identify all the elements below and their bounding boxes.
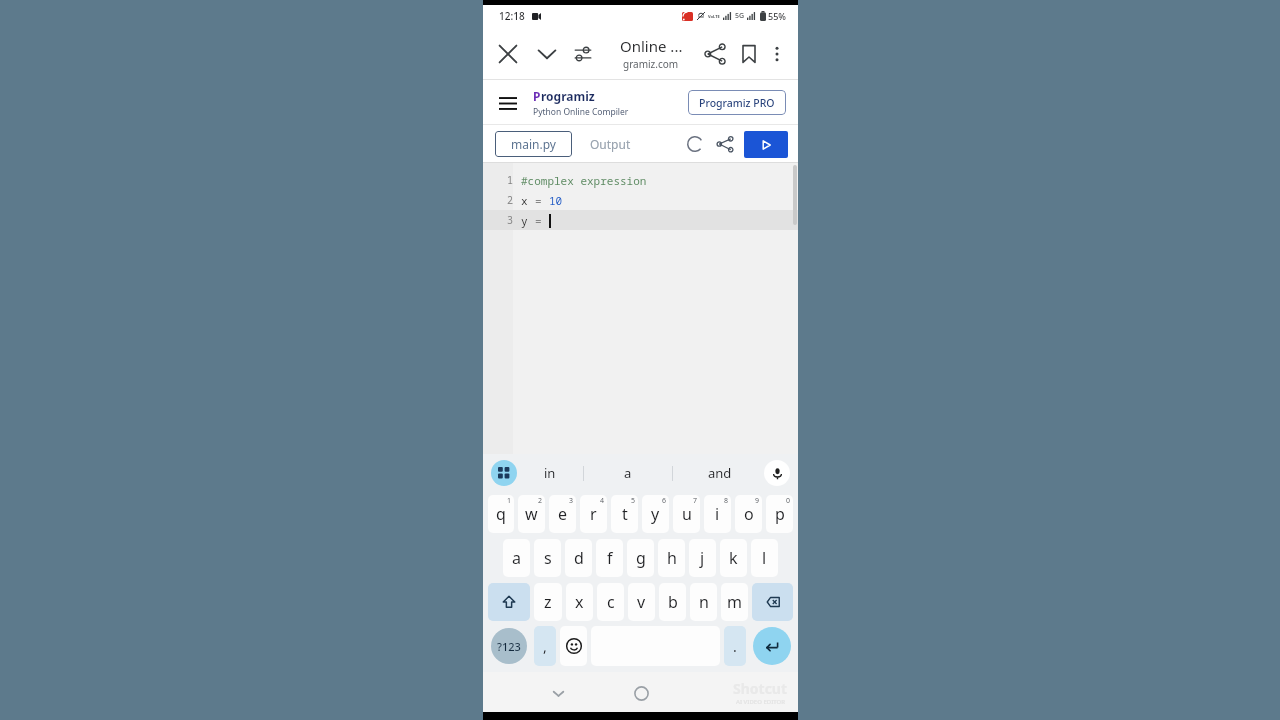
button[interactable]: . xyxy=(724,626,746,666)
button[interactable]: x xyxy=(566,583,593,621)
staticText: z xyxy=(544,591,552,613)
staticText: ?123 xyxy=(497,639,521,654)
button[interactable]: Page settings xyxy=(570,41,596,67)
button[interactable]: z xyxy=(534,583,562,621)
staticText: 5G xyxy=(735,11,745,21)
staticText: u xyxy=(682,503,692,525)
button[interactable]: Share code xyxy=(712,131,738,157)
staticText: a xyxy=(512,547,521,569)
button[interactable]: g xyxy=(627,539,654,577)
button[interactable]: m xyxy=(721,583,748,621)
staticText: Output xyxy=(590,136,631,152)
staticText: 9 xyxy=(755,496,760,506)
button[interactable]: main.py xyxy=(495,131,572,157)
button[interactable]: y xyxy=(642,495,669,533)
staticText: h xyxy=(667,547,677,569)
staticText: 7 xyxy=(693,496,698,506)
button[interactable]: p xyxy=(766,495,793,533)
button[interactable]: s xyxy=(534,539,561,577)
staticText: and xyxy=(708,464,732,482)
button[interactable]: Home xyxy=(628,680,654,706)
button[interactable]: Hide keyboard xyxy=(545,680,571,706)
staticText: y xyxy=(521,213,535,228)
staticText: in xyxy=(544,464,556,482)
button[interactable]: Close xyxy=(493,39,523,69)
button[interactable]: Share xyxy=(700,39,730,69)
button[interactable]: b xyxy=(659,583,686,621)
staticText: p xyxy=(775,503,785,525)
staticText: v xyxy=(637,591,646,613)
staticText: 3 xyxy=(507,213,513,227)
staticText: 2 xyxy=(507,193,513,207)
button[interactable]: n xyxy=(690,583,717,621)
staticText: d xyxy=(574,547,584,569)
staticText: c xyxy=(607,591,615,613)
staticText: 5 xyxy=(631,496,636,506)
staticText: a xyxy=(624,464,632,482)
button[interactable]: Keyboard switcher xyxy=(491,460,517,486)
staticText: y xyxy=(651,503,660,525)
button[interactable]: w xyxy=(518,495,545,533)
button[interactable]: Enter xyxy=(753,627,791,665)
staticText: 55% xyxy=(768,10,786,22)
staticText: t xyxy=(622,503,628,525)
button[interactable]: Menu xyxy=(495,90,521,116)
button[interactable]: 1 xyxy=(483,163,798,454)
staticText: s xyxy=(544,547,552,569)
button[interactable]: o xyxy=(735,495,762,533)
button[interactable]: e xyxy=(549,495,576,533)
staticText: x xyxy=(575,591,584,613)
staticText: Python Online Compiler xyxy=(533,106,629,118)
staticText: = xyxy=(535,213,549,228)
button[interactable]: Programiz PRO xyxy=(688,90,786,115)
button[interactable]: Bookmark xyxy=(734,39,764,69)
button[interactable]: Emoji xyxy=(560,626,587,666)
staticText: 1 xyxy=(507,496,512,506)
button[interactable]: a xyxy=(503,539,530,577)
staticText: w xyxy=(525,503,538,525)
staticText: rogramiz xyxy=(541,88,595,104)
button[interactable]: d xyxy=(565,539,592,577)
button[interactable]: j xyxy=(689,539,716,577)
staticText: P xyxy=(533,88,541,104)
button[interactable]: l xyxy=(751,539,778,577)
staticText: m xyxy=(727,591,742,613)
staticText: main.py xyxy=(511,136,556,152)
button[interactable]: Shift xyxy=(488,583,530,621)
staticText: VoLTE xyxy=(708,14,720,19)
button[interactable]: q xyxy=(488,495,514,533)
button[interactable]: Run xyxy=(744,131,788,158)
button[interactable]: Expand xyxy=(532,39,562,69)
staticText: #complex expression xyxy=(521,173,647,188)
staticText: f xyxy=(607,547,613,569)
button[interactable]: , xyxy=(534,626,556,666)
staticText: 1 xyxy=(507,173,513,187)
button[interactable]: h xyxy=(658,539,685,577)
button[interactable]: v xyxy=(628,583,655,621)
staticText: n xyxy=(699,591,709,613)
staticText: 6 xyxy=(662,496,667,506)
staticText: Programiz PRO xyxy=(699,96,775,110)
button[interactable]: Backspace xyxy=(752,583,793,621)
button[interactable]: f xyxy=(596,539,623,577)
button[interactable]: Output xyxy=(572,131,648,157)
staticText: gramiz.com xyxy=(623,57,679,71)
button[interactable]: ?123 xyxy=(491,628,527,664)
staticText: 10 xyxy=(549,193,563,208)
staticText: , xyxy=(543,637,547,656)
staticText: l xyxy=(762,547,767,569)
button[interactable]: i xyxy=(704,495,731,533)
button[interactable]: c xyxy=(597,583,624,621)
button[interactable]: r xyxy=(580,495,607,533)
button[interactable]: More options xyxy=(764,41,790,67)
staticText: r xyxy=(590,503,597,525)
button[interactable]: Voice input xyxy=(764,460,790,486)
button[interactable]: u xyxy=(673,495,700,533)
staticText: x xyxy=(521,193,535,208)
button[interactable]: t xyxy=(611,495,638,533)
button[interactable]: Dark mode xyxy=(682,131,708,157)
staticText: q xyxy=(496,503,506,525)
button[interactable]: k xyxy=(720,539,747,577)
staticText: . xyxy=(733,637,737,656)
